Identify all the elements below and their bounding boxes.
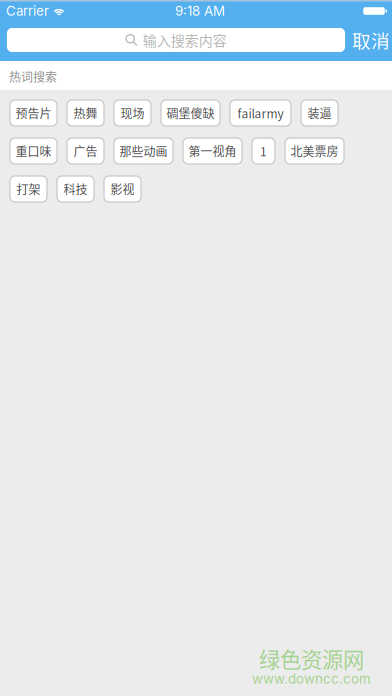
staticText: 北美票房 (290, 142, 338, 160)
button[interactable]: 影视 (104, 176, 141, 202)
staticText: 预告片 (15, 104, 51, 122)
staticText: 影视 (110, 180, 134, 198)
button[interactable]: 碉堡傻缺 (161, 100, 220, 126)
button[interactable]: 北美票房 (285, 138, 344, 164)
staticText: Carrier (6, 3, 49, 19)
staticText: 取消 (352, 26, 390, 53)
button[interactable]: 广告 (67, 138, 104, 164)
staticText: 装逼 (307, 104, 331, 122)
staticText: 科技 (63, 180, 87, 198)
staticText: 9:18 AM (175, 3, 225, 19)
button[interactable]: 第一视角 (183, 138, 242, 164)
staticText: 广告 (73, 142, 97, 160)
staticText: www.downcc.com (252, 671, 371, 687)
button[interactable]: 热舞 (67, 100, 104, 126)
staticText: 现场 (120, 104, 144, 122)
button[interactable]: 科技 (57, 176, 94, 202)
staticText: 那些动画 (119, 142, 167, 160)
staticText: 输入搜索内容 (143, 30, 227, 50)
staticText: failarmy (237, 104, 283, 122)
staticText: 第一视角 (188, 142, 236, 160)
staticText: 碉堡傻缺 (166, 104, 214, 122)
button[interactable]: 那些动画 (114, 138, 173, 164)
staticText: 重口味 (15, 142, 51, 160)
button[interactable]: 取消 (347, 25, 392, 57)
staticText: 热词搜索 (9, 68, 57, 85)
staticText: 热舞 (73, 104, 97, 122)
staticText: 绿色资源网 (259, 643, 364, 674)
button[interactable]: 现场 (114, 100, 151, 126)
button[interactable]: 预告片 (10, 100, 57, 126)
button[interactable]: failarmy (230, 100, 291, 126)
button[interactable]: 重口味 (10, 138, 57, 164)
staticText: 1 (260, 142, 267, 160)
staticText: 打架 (16, 180, 40, 198)
button[interactable]: 打架 (10, 176, 47, 202)
button[interactable]: 装逼 (301, 100, 338, 126)
button[interactable]: 1 (252, 138, 275, 164)
